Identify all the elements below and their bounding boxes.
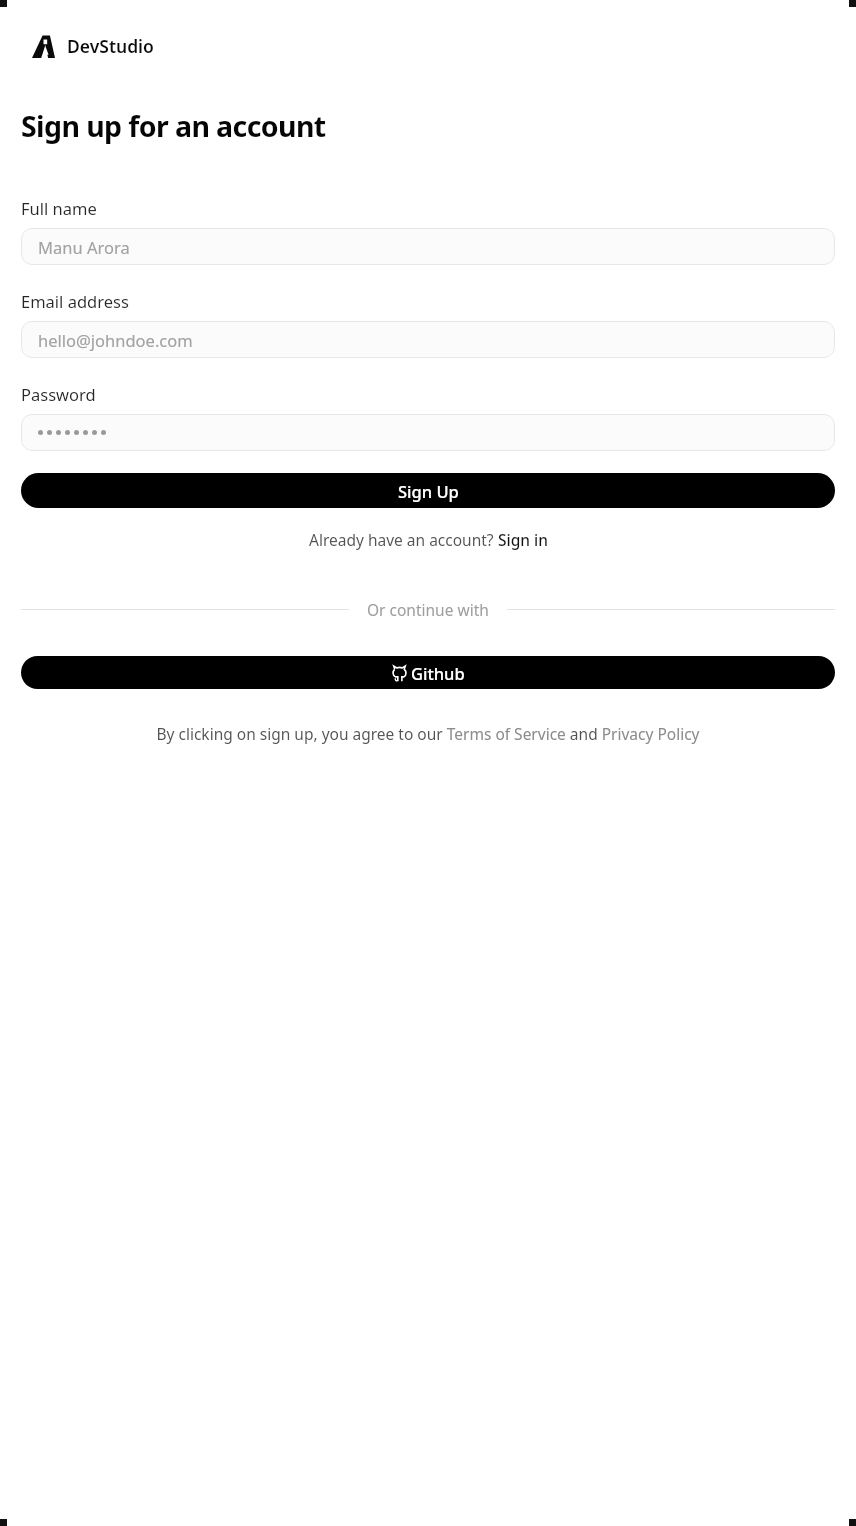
button[interactable]: Github: [21, 656, 835, 689]
other: DevStudio logo: [32, 35, 55, 58]
button[interactable]: DevStudio logo: [32, 32, 154, 60]
staticText: Already have an account?: [309, 529, 498, 550]
staticText: Sign up for an account: [21, 107, 326, 146]
button[interactable]: [21, 414, 835, 451]
staticText: Manu Arora: [38, 236, 130, 258]
button[interactable]: hello@johndoe.com: [21, 321, 835, 358]
staticText: hello@johndoe.com: [38, 329, 193, 351]
button[interactable]: By clicking on sign up, you agree to our…: [46, 723, 810, 744]
staticText: Sign Up: [398, 480, 459, 502]
button[interactable]: Sign Up: [21, 473, 835, 508]
button[interactable]: Manu Arora: [21, 228, 835, 265]
button[interactable]: Already have an account?: [305, 527, 552, 552]
staticText: Email address: [21, 290, 129, 312]
staticText: Or continue with: [367, 599, 489, 620]
staticText: DevStudio: [67, 34, 154, 58]
staticText: Password: [21, 383, 96, 405]
staticText: Full name: [21, 197, 97, 219]
staticText: Github: [411, 662, 465, 684]
other: Github: [391, 665, 408, 682]
staticText: Sign in: [498, 529, 548, 550]
